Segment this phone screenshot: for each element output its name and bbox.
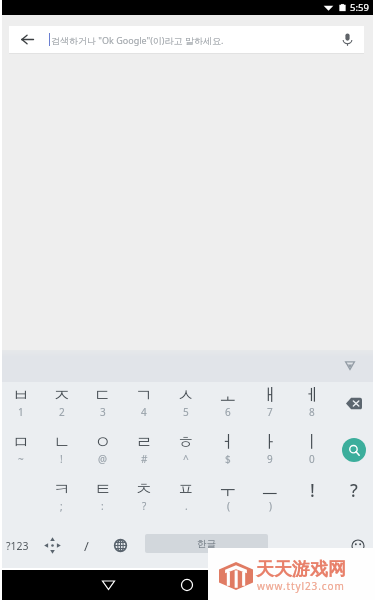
button[interactable]: ㄹ <box>123 429 165 476</box>
button[interactable]: ㅁ <box>0 429 41 476</box>
button[interactable]: ㅍ <box>165 476 207 523</box>
button[interactable]: ㄱ <box>123 382 165 429</box>
button[interactable]: Backspace <box>338 387 370 419</box>
staticText: 3 <box>100 405 106 419</box>
staticText: 8 <box>309 405 315 419</box>
staticText: ㅅ <box>177 384 195 406</box>
staticText: ㄱ <box>135 384 153 406</box>
staticText: . <box>322 537 326 555</box>
staticText: 한글 <box>197 538 216 550</box>
staticText: ㅐ <box>261 384 279 406</box>
button[interactable]: ㅜ <box>207 476 249 523</box>
staticText: www.ttyl23.com <box>257 579 345 593</box>
button[interactable]: ㅔ <box>291 382 333 429</box>
staticText: ㅡ <box>261 478 279 500</box>
staticText: . <box>185 499 188 513</box>
staticText: ( <box>227 499 230 513</box>
staticText: ㅗ <box>219 384 237 406</box>
button[interactable]: ㅐ <box>249 382 291 429</box>
staticText: @ <box>98 452 107 466</box>
staticText: $ <box>225 452 231 466</box>
staticText: : <box>101 499 104 513</box>
staticText: ㅔ <box>303 384 321 406</box>
staticText: 9 <box>267 452 273 466</box>
staticText: 7 <box>267 405 273 419</box>
staticText: 5:59 <box>350 1 369 14</box>
button[interactable]: ㅣ <box>291 429 333 476</box>
button[interactable]: , <box>273 523 307 568</box>
staticText: ㅌ <box>94 478 112 500</box>
staticText: / <box>84 537 89 555</box>
button[interactable]: ㄴ <box>41 429 82 476</box>
button[interactable]: ㅓ <box>207 429 249 476</box>
button[interactable]: 한글 <box>145 534 268 553</box>
button[interactable]: Back <box>9 26 46 53</box>
staticText: ! <box>60 452 63 466</box>
staticText: ? <box>142 499 147 513</box>
staticText: ; <box>60 499 63 513</box>
button[interactable]: Move cursor <box>35 523 69 568</box>
button[interactable]: ㅊ <box>123 476 165 523</box>
button[interactable]: Recent apps <box>251 570 281 600</box>
staticText: 5 <box>183 405 189 419</box>
button[interactable]: ? <box>333 476 375 523</box>
button[interactable]: ㅂ <box>0 382 41 429</box>
button[interactable]: ㅏ <box>249 429 291 476</box>
staticText: ) <box>269 499 272 513</box>
staticText: # <box>141 452 148 466</box>
button[interactable]: Emoji <box>341 523 375 568</box>
staticText: 2 <box>59 405 65 419</box>
staticText: ㅁ <box>12 431 30 453</box>
button[interactable]: ㅇ <box>82 429 123 476</box>
staticText: ㅏ <box>261 431 279 453</box>
staticText: ㅍ <box>177 478 195 500</box>
staticText: ㅋ <box>53 478 71 500</box>
staticText: 4 <box>141 405 147 419</box>
button[interactable]: ㅌ <box>82 476 123 523</box>
staticText: ㄹ <box>135 431 153 453</box>
staticText: ㅓ <box>219 431 237 453</box>
staticText: 0 <box>309 452 315 466</box>
button[interactable]: ㅡ <box>249 476 291 523</box>
staticText: ㅎ <box>177 431 195 453</box>
button[interactable]: Change language <box>103 523 137 568</box>
staticText: ㅜ <box>219 478 237 500</box>
staticText: ? <box>350 478 358 502</box>
button[interactable]: ㅋ <box>41 476 82 523</box>
button[interactable]: Voice search <box>330 26 364 53</box>
staticText: ㄴ <box>53 431 71 453</box>
staticText: ~ <box>18 452 24 466</box>
staticText: 天天游戏网 <box>256 558 346 581</box>
button[interactable]: ! <box>291 476 333 523</box>
button[interactable]: Back <box>9 26 364 53</box>
staticText: ㄷ <box>94 384 112 406</box>
button[interactable]: ㅈ <box>41 382 82 429</box>
staticText: 검색하거나 "Ok Google"(이)라고 말하세요. <box>51 34 224 46</box>
button[interactable]: ㅎ <box>165 429 207 476</box>
staticText: ㅂ <box>12 384 30 406</box>
staticText: 6 <box>225 405 231 419</box>
staticText: ! <box>310 478 315 502</box>
staticText: 1 <box>18 405 24 419</box>
button[interactable]: / <box>69 523 103 568</box>
button[interactable]: Back <box>93 570 123 600</box>
button[interactable]: ?123 <box>0 523 35 568</box>
button[interactable]: Search <box>342 438 366 462</box>
staticText: ㅊ <box>135 478 153 500</box>
staticText: ㅣ <box>303 431 321 453</box>
staticText: ㅇ <box>94 431 112 453</box>
button[interactable]: ㅗ <box>207 382 249 429</box>
button[interactable]: ㅅ <box>165 382 207 429</box>
staticText: ^ <box>183 452 189 466</box>
staticText: ㅈ <box>53 384 71 406</box>
staticText: ?123 <box>6 539 29 553</box>
staticText: , <box>288 537 292 555</box>
button[interactable]: ㄷ <box>82 382 123 429</box>
button[interactable]: Home <box>172 570 202 600</box>
button[interactable]: . <box>307 523 341 568</box>
button[interactable]: Hide keyboard <box>340 355 360 375</box>
